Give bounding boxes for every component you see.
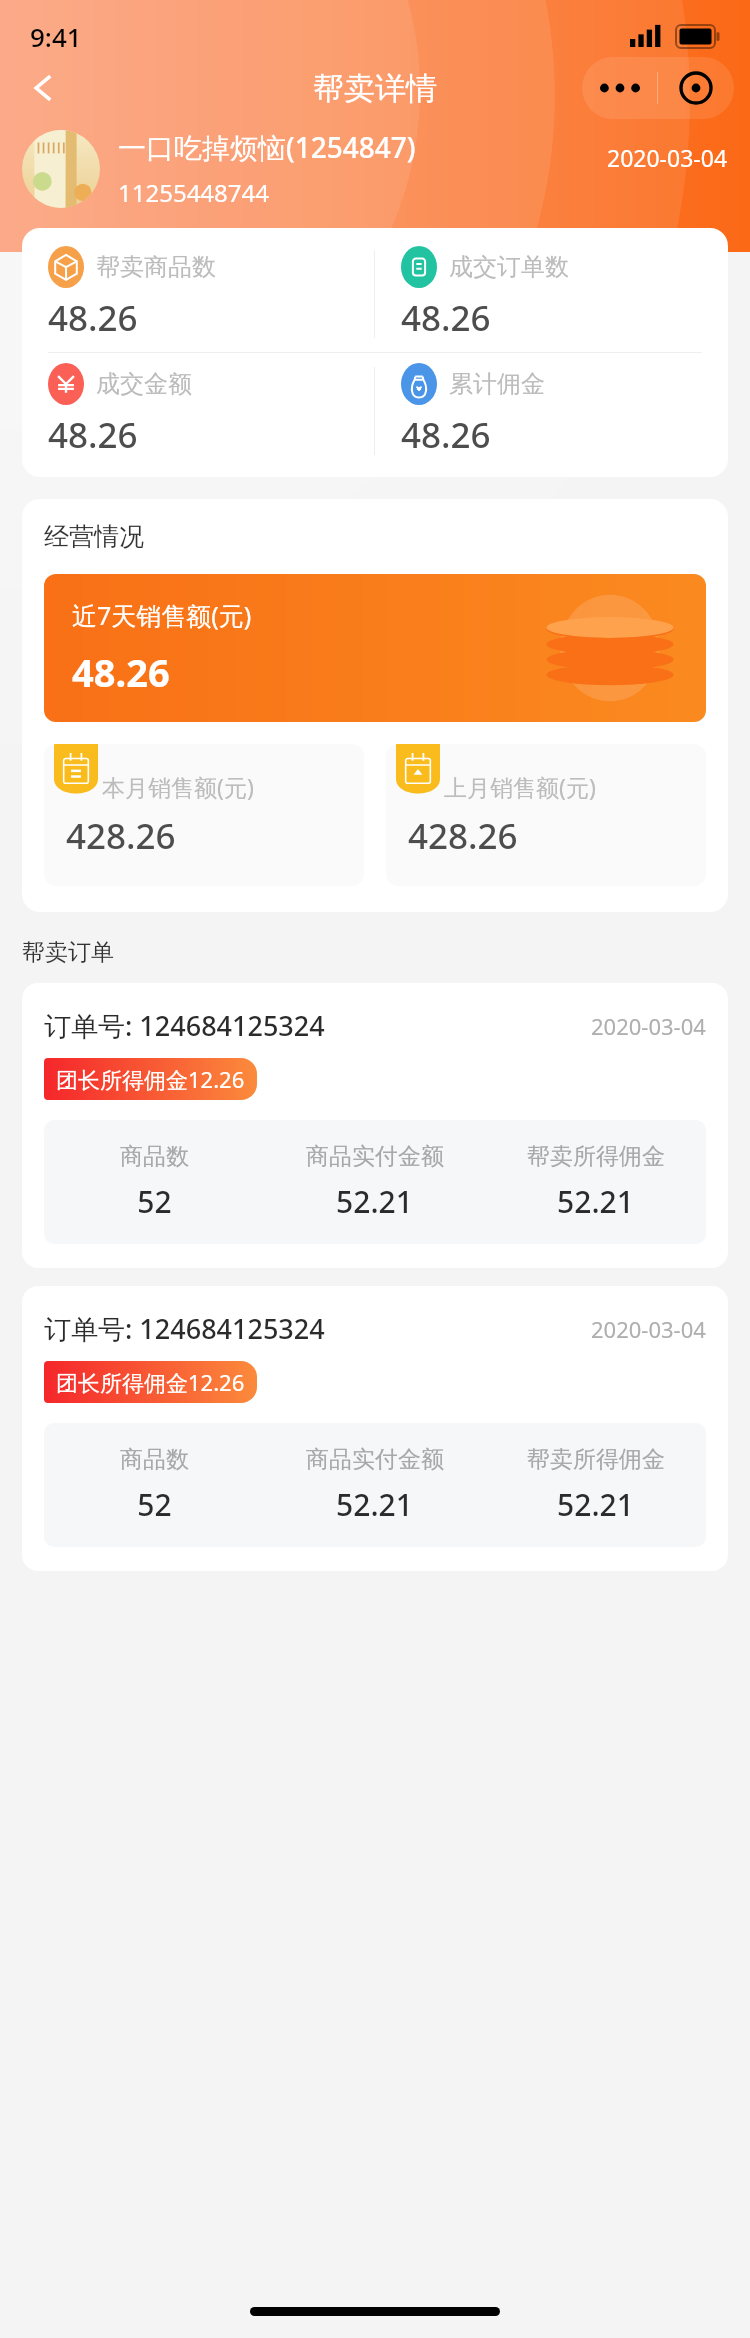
staticText: 2020-03-04: [591, 1314, 706, 1344]
staticText: 52.21: [557, 1181, 634, 1222]
staticText: 商品实付金额: [306, 1445, 444, 1474]
staticText: 48.26: [48, 294, 138, 342]
staticText: 帮卖所得佣金: [527, 1445, 665, 1474]
staticText: 52.21: [336, 1484, 413, 1525]
staticText: 团长所得佣金12.26: [56, 1367, 245, 1397]
staticText: 经营情况: [44, 521, 144, 552]
staticText: 一口吃掉烦恼(1254847): [118, 128, 416, 166]
staticText: 帮卖详情: [313, 69, 437, 108]
staticText: 帮卖商品数: [96, 252, 216, 282]
button[interactable]: 订单号: 124684125324: [22, 1286, 728, 1571]
staticText: 52: [137, 1484, 172, 1525]
staticText: 52.21: [336, 1181, 413, 1222]
staticText: 48.26: [401, 294, 491, 342]
staticText: 成交订单数: [449, 252, 569, 282]
staticText: 订单号: 124684125324: [44, 1310, 325, 1347]
button[interactable]: 累计佣金: [375, 353, 728, 469]
staticText: 帮卖订单: [22, 938, 114, 967]
staticText: 成交金额: [96, 369, 192, 399]
button[interactable]: 近7天销售额(元): [44, 574, 706, 722]
button[interactable]: 本月销售额(元): [44, 744, 364, 886]
button[interactable]: Close: [658, 57, 734, 119]
staticText: 9:41: [30, 19, 82, 54]
staticText: 52.21: [557, 1484, 634, 1525]
staticText: 上月销售额(元): [444, 771, 596, 802]
staticText: 428.26: [408, 812, 518, 860]
staticText: 48.26: [72, 646, 170, 698]
staticText: 本月销售额(元): [102, 771, 254, 802]
staticText: 2020-03-04: [607, 142, 728, 173]
staticText: 近7天销售额(元): [72, 598, 252, 632]
button[interactable]: 成交金额: [22, 353, 374, 469]
button[interactable]: 成交订单数: [375, 236, 728, 352]
button[interactable]: Back: [12, 56, 76, 120]
staticText: 订单号: 124684125324: [44, 1007, 325, 1044]
staticText: 2020-03-04: [591, 1011, 706, 1041]
button[interactable]: Avatar: [22, 130, 100, 208]
staticText: 累计佣金: [449, 369, 545, 399]
staticText: 428.26: [66, 812, 176, 860]
button[interactable]: More options: [582, 57, 657, 119]
staticText: 48.26: [401, 411, 491, 459]
staticText: 商品数: [120, 1445, 189, 1474]
staticText: 帮卖所得佣金: [527, 1142, 665, 1171]
staticText: 48.26: [48, 411, 138, 459]
staticText: 11255448744: [118, 176, 270, 209]
button[interactable]: 上月销售额(元): [386, 744, 706, 886]
staticText: 商品实付金额: [306, 1142, 444, 1171]
button[interactable]: 订单号: 124684125324: [22, 983, 728, 1268]
button[interactable]: 帮卖商品数: [22, 236, 374, 352]
staticText: 52: [137, 1181, 172, 1222]
staticText: 商品数: [120, 1142, 189, 1171]
staticText: 团长所得佣金12.26: [56, 1064, 245, 1094]
